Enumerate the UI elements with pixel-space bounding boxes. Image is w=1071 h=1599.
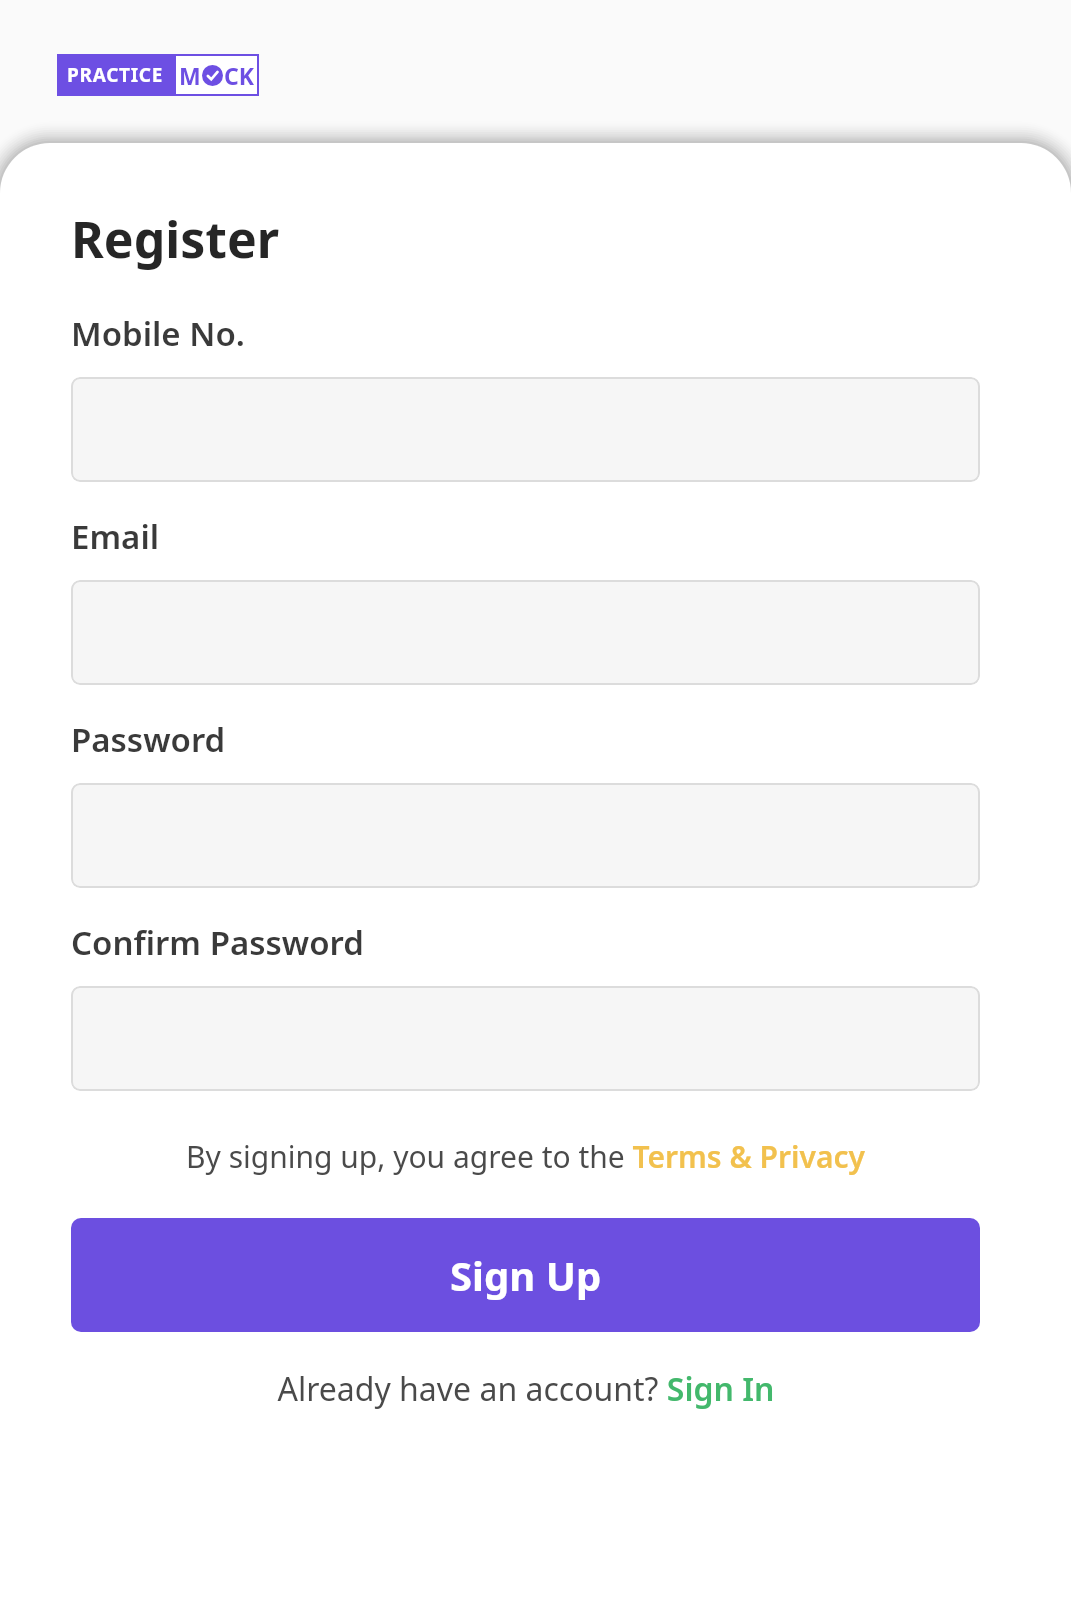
staticText: CK	[224, 60, 255, 91]
staticText: M	[179, 60, 201, 91]
button[interactable]: Sign Up	[71, 1218, 980, 1332]
staticText: Email	[71, 514, 160, 559]
button[interactable]: Confirm Password	[71, 986, 980, 1091]
staticText: Password	[71, 717, 226, 762]
staticText: Mobile No.	[71, 311, 245, 356]
button[interactable]: Mobile No.	[71, 377, 980, 482]
staticText: Already have an account? Sign In	[277, 1367, 775, 1411]
button[interactable]: By signing up, you agree to the Terms & …	[71, 1136, 980, 1177]
button[interactable]: Email	[71, 580, 980, 685]
staticText: Confirm Password	[71, 920, 364, 965]
staticText: Register	[71, 205, 280, 273]
staticText: Sign Up	[450, 1248, 602, 1302]
button[interactable]: Password	[71, 783, 980, 888]
staticText: PRACTICE	[67, 62, 164, 88]
button[interactable]: Already have an account? Sign In	[71, 1367, 980, 1411]
button[interactable]: PracticeMock logo	[57, 54, 259, 96]
staticText: By signing up, you agree to the Terms & …	[186, 1136, 865, 1177]
